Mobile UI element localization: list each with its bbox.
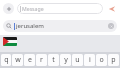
staticText: r (40, 55, 43, 65)
button[interactable]: Message (17, 3, 103, 14)
button[interactable]: y (60, 54, 71, 66)
staticText: i (89, 55, 91, 65)
staticText: q (4, 55, 9, 65)
staticText: t (52, 55, 55, 65)
staticText: jerusalem (16, 22, 108, 30)
button[interactable]: q (1, 54, 11, 66)
button[interactable]: r (36, 54, 47, 66)
staticText: w (15, 55, 21, 65)
button[interactable]: jerusalem (3, 20, 117, 32)
button[interactable]: Send (106, 3, 117, 14)
button[interactable]: o (96, 54, 107, 66)
staticText: o (99, 55, 104, 65)
button[interactable]: t (48, 54, 59, 66)
staticText: y (64, 55, 68, 65)
staticText: p (111, 55, 116, 65)
button[interactable]: w (12, 54, 23, 66)
button[interactable]: Clear search (108, 23, 114, 29)
button[interactable]: u (72, 54, 83, 66)
button[interactable]: e (24, 54, 35, 66)
button[interactable]: p (108, 54, 119, 66)
button[interactable]: Flag of Palestine sticker (3, 37, 17, 46)
staticText: e (28, 55, 32, 65)
button[interactable]: i (84, 54, 95, 66)
button[interactable]: Add attachment (3, 3, 14, 14)
staticText: Message (22, 5, 44, 12)
staticText: u (75, 55, 80, 65)
